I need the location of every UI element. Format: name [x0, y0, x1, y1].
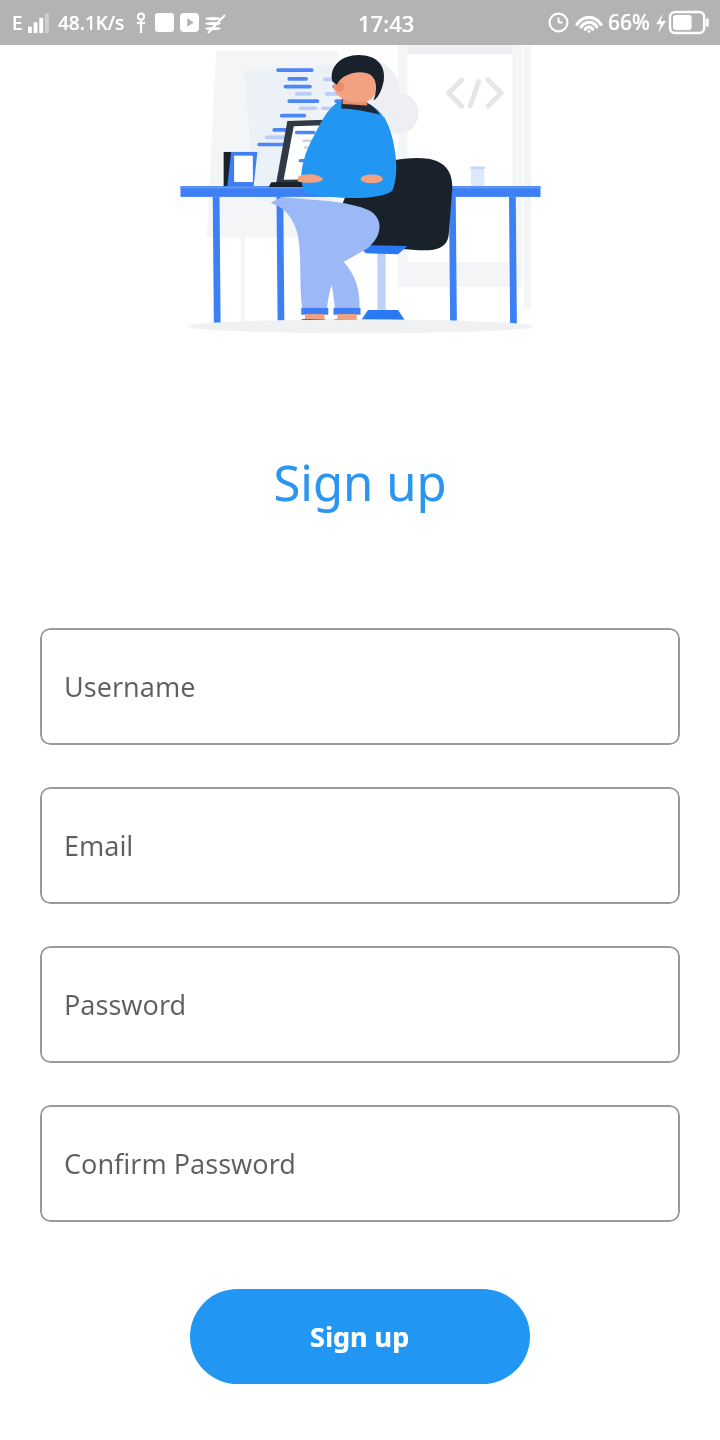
staticText: Sign up: [310, 1318, 410, 1355]
staticText: 48.1K/s: [58, 10, 125, 36]
button[interactable]: Confirm Password: [40, 1105, 680, 1222]
staticText: Password: [64, 986, 187, 1023]
button[interactable]: Password: [40, 946, 680, 1063]
staticText: Confirm Password: [64, 1145, 296, 1182]
staticText: Username: [64, 668, 196, 705]
button[interactable]: Username: [40, 628, 680, 745]
staticText: 17:43: [358, 8, 415, 38]
staticText: E: [12, 10, 23, 36]
staticText: Email: [64, 827, 134, 864]
button[interactable]: Sign up: [190, 1289, 530, 1384]
staticText: Sign up: [0, 449, 720, 516]
staticText: 66%: [608, 8, 650, 37]
button[interactable]: Email: [40, 787, 680, 904]
